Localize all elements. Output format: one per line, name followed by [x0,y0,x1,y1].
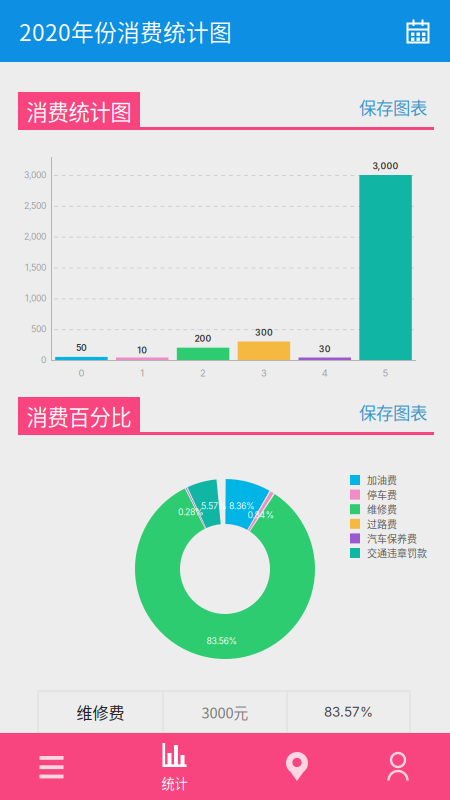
button[interactable]: 保存图表 [347,398,427,426]
staticText: 2 [200,367,206,379]
staticText: 5 [383,367,389,379]
staticText: 3000元 [201,701,248,723]
button[interactable]: Calendar [396,9,440,53]
staticText: 1 [140,367,144,379]
staticText: 5.57% [201,501,227,511]
staticText: 1,000 [25,293,46,304]
staticText: 加油费 [367,473,397,487]
staticText: 0.28% [178,507,204,517]
staticText: 统计 [161,773,187,793]
staticText: 2,500 [24,201,46,211]
staticText: 0.84% [247,510,274,520]
staticText: 维修费 [76,700,124,724]
staticText: 2,000 [24,231,46,242]
staticText: 500 [31,324,46,334]
button[interactable]: Location [245,734,349,800]
staticText: 50 [76,343,87,353]
staticText: 8.36% [229,501,255,511]
staticText: 0 [41,355,46,365]
staticText: 3 [261,367,267,379]
staticText: 3,000 [24,170,46,180]
staticText: 汽车保养费 [367,531,417,546]
staticText: 1,500 [25,262,46,273]
staticText: 83.56% [206,636,237,646]
staticText: 保存图表 [359,94,427,120]
staticText: 300 [255,327,273,338]
button[interactable]: Menu [0,734,103,800]
staticText: 30 [319,344,331,354]
button[interactable]: 统计 [122,738,226,792]
staticText: 消费统计图 [26,96,131,126]
staticText: 停车费 [367,487,397,502]
button[interactable]: 保存图表 [347,93,427,121]
staticText: 83.57% [324,704,373,720]
button[interactable]: Profile [346,733,450,799]
staticText: 4 [322,367,328,379]
staticText: 2020年份消费统计图 [19,15,232,47]
staticText: 过路费 [367,517,397,531]
staticText: 3,000 [373,161,399,171]
staticText: 200 [195,333,212,344]
staticText: 交通违章罚款 [367,546,427,560]
staticText: 保存图表 [359,399,427,425]
staticText: 消费百分比 [26,401,131,431]
staticText: 10 [137,345,147,356]
staticText: 0 [78,367,84,379]
staticText: 维修费 [367,502,397,516]
